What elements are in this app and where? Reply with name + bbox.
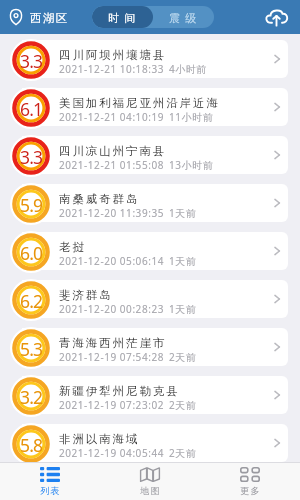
button[interactable]: 地图 xyxy=(100,463,200,500)
button[interactable]: 更多 xyxy=(200,463,300,500)
staticText: 2021-12-21 01:55:08 xyxy=(59,158,164,172)
staticText: 美国加利福尼亚州沿岸近海 xyxy=(59,96,220,110)
staticText: 3.3 xyxy=(20,49,43,73)
staticText: 时 间 xyxy=(108,10,137,25)
staticText: 5.8 xyxy=(20,433,43,457)
button[interactable]: Upload xyxy=(261,2,291,32)
button[interactable]: 非洲以南海域 xyxy=(22,424,288,462)
staticText: 2021-12-20 11:39:35 xyxy=(59,206,164,220)
staticText: 11小时前 xyxy=(169,110,214,124)
staticText: 6.2 xyxy=(20,289,43,313)
staticText: 2021-12-19 04:05:44 xyxy=(59,446,164,460)
button[interactable]: 斐济群岛 xyxy=(22,280,288,318)
staticText: 2天前 xyxy=(169,398,197,412)
button[interactable]: 列表 xyxy=(0,463,100,500)
button[interactable]: 南桑威奇群岛 xyxy=(22,184,288,222)
staticText: 斐济群岛 xyxy=(59,288,113,302)
button[interactable]: 新疆伊犁州尼勒克县 xyxy=(22,376,288,414)
staticText: 3.2 xyxy=(20,385,43,409)
staticText: 1天前 xyxy=(169,254,197,268)
button[interactable]: 四川凉山州宁南县 xyxy=(22,136,288,174)
staticText: 四川凉山州宁南县 xyxy=(59,144,167,158)
button[interactable]: 美国加利福尼亚州沿岸近海 xyxy=(22,88,288,126)
staticText: 2021-12-19 07:54:28 xyxy=(59,350,164,364)
staticText: 西湖区 xyxy=(30,11,69,25)
staticText: 5.9 xyxy=(20,193,43,217)
staticText: 震 级 xyxy=(169,10,198,25)
staticText: 2021-12-20 05:06:14 xyxy=(59,254,164,268)
staticText: 3.3 xyxy=(20,145,43,169)
staticText: 四川阿坝州壤塘县 xyxy=(59,48,167,62)
staticText: 6.0 xyxy=(20,241,43,265)
staticText: 13小时前 xyxy=(169,158,214,172)
staticText: 地图 xyxy=(140,485,161,496)
staticText: 2021-12-21 10:18:33 xyxy=(59,62,164,76)
staticText: 4小时前 xyxy=(169,62,207,76)
button[interactable]: 时 间 xyxy=(92,6,153,28)
staticText: 5.3 xyxy=(20,337,43,361)
staticText: 1天前 xyxy=(169,206,197,220)
staticText: 2天前 xyxy=(169,446,197,460)
staticText: 6.1 xyxy=(20,97,43,121)
staticText: 非洲以南海域 xyxy=(59,432,140,446)
button[interactable]: 四川阿坝州壤塘县 xyxy=(22,40,288,78)
button[interactable]: 震 级 xyxy=(153,6,214,28)
staticText: 2021-12-20 00:28:23 xyxy=(59,302,164,316)
staticText: 2021-12-21 04:10:19 xyxy=(59,110,164,124)
staticText: 更多 xyxy=(240,485,261,496)
staticText: 青海海西州茫崖市 xyxy=(59,336,167,350)
button[interactable]: 青海海西州茫崖市 xyxy=(22,328,288,366)
button[interactable]: 西湖区 xyxy=(0,6,74,29)
staticText: 南桑威奇群岛 xyxy=(59,192,140,206)
staticText: 新疆伊犁州尼勒克县 xyxy=(59,384,180,398)
staticText: 老挝 xyxy=(59,240,86,254)
staticText: 列表 xyxy=(40,485,61,496)
staticText: 1天前 xyxy=(169,302,197,316)
staticText: 2021-12-19 07:23:02 xyxy=(59,398,164,412)
button[interactable]: 老挝 xyxy=(22,232,288,270)
staticText: 2天前 xyxy=(169,350,197,364)
